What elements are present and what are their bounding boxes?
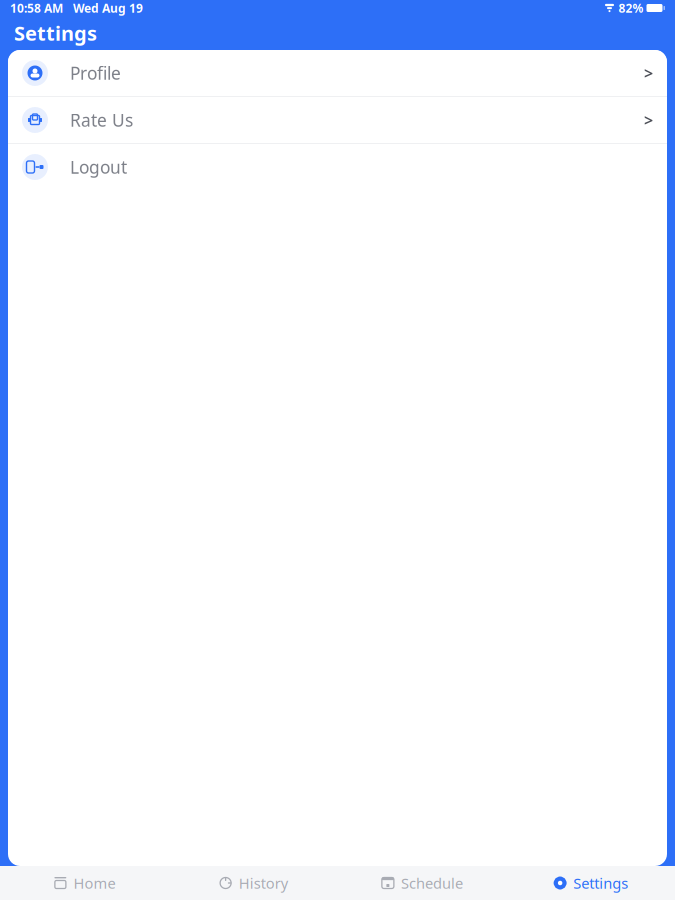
staticText: History xyxy=(239,873,288,893)
button[interactable]: Schedule xyxy=(337,866,506,900)
staticText: Settings xyxy=(573,873,628,893)
button[interactable]: Rate Us xyxy=(8,97,667,143)
button[interactable]: Logout xyxy=(8,144,667,190)
staticText: > xyxy=(644,62,653,84)
staticText: Wed Aug 19 xyxy=(73,0,143,16)
staticText: > xyxy=(644,109,653,131)
button[interactable]: History xyxy=(169,866,338,900)
button[interactable]: Home xyxy=(0,866,169,900)
staticText: Home xyxy=(73,873,115,893)
staticText: Logout xyxy=(70,155,127,178)
staticText: Schedule xyxy=(401,873,463,893)
staticText: Settings xyxy=(14,20,97,46)
button[interactable]: Profile xyxy=(8,50,667,96)
staticText: Rate Us xyxy=(70,108,133,131)
staticText: 82% xyxy=(618,0,643,16)
staticText: Profile xyxy=(70,61,121,84)
staticText: 10:58 AM xyxy=(10,0,63,16)
button[interactable]: Settings xyxy=(506,866,675,900)
